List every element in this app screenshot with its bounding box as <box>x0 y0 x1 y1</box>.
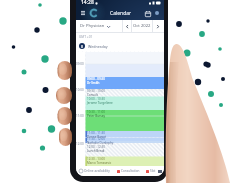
staticText: Consultation <box>121 169 140 173</box>
staticText: 12:00 <box>76 142 84 146</box>
staticText: 11:00 - 11:30 <box>87 131 105 135</box>
staticText: 10:00 <box>76 88 84 92</box>
staticText: 12:00 - 12:30 <box>87 145 105 149</box>
staticText: 11:00 <box>76 114 84 118</box>
staticText: Slot <box>150 169 156 173</box>
staticText: Dr Smith <box>87 81 100 85</box>
staticText: 10:00 - 10:30 <box>87 97 105 101</box>
button[interactable]: Consultation <box>117 169 140 173</box>
staticText: 14:28 <box>81 0 94 6</box>
button[interactable]: Next month <box>153 20 161 32</box>
staticText: GMT +01 <box>79 35 93 39</box>
staticText: Nathalie Dunlophy <box>87 141 114 145</box>
staticText: 8 <box>81 44 84 49</box>
button[interactable]: Open navigation menu <box>79 9 87 17</box>
button[interactable]: Slot <box>146 169 156 173</box>
staticText: Jerome Turgeliene <box>87 101 113 105</box>
button[interactable]: Online availability <box>78 169 111 173</box>
button[interactable]: Add event <box>153 9 161 17</box>
staticText: 09:00 - 09:30 <box>87 77 105 81</box>
staticText: 09:00 <box>76 62 84 66</box>
staticText: Donna Barret <box>87 135 107 139</box>
staticText: Lunch Break <box>87 149 105 153</box>
button[interactable]: Dr Physician <box>79 23 111 29</box>
staticText: 09:30 - 10:00 <box>87 89 105 93</box>
staticText: 11:30 - 12:00 <box>87 137 105 141</box>
staticText: Peter Bursay <box>87 114 105 118</box>
staticText: Online availability <box>84 169 110 173</box>
staticText: Marco Tomasevic <box>87 161 112 165</box>
staticText: Wednesday <box>88 44 108 49</box>
button[interactable]: Previous month <box>123 20 131 32</box>
staticText: Oct 2022 <box>133 23 151 29</box>
button[interactable]: Switch calendar view <box>143 9 152 18</box>
staticText: Calendar <box>110 10 132 17</box>
staticText: 10:30 - 11:00 <box>87 110 105 114</box>
staticText: Dr Physician <box>80 23 105 29</box>
staticText: Consult <box>87 93 98 97</box>
staticText: 12:30 - 13:00 <box>87 157 105 161</box>
